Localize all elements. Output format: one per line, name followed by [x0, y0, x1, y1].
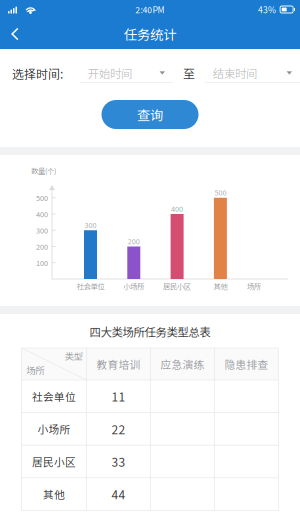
- staticText: 隐患排查: [224, 356, 268, 372]
- staticText: 结束时间: [213, 65, 257, 81]
- staticText: 11: [111, 388, 125, 405]
- staticText: 查询: [137, 105, 163, 124]
- staticText: 应急演练: [160, 356, 204, 372]
- staticText: 场所: [26, 363, 44, 377]
- staticText: 500: [214, 187, 226, 197]
- button[interactable]: 结束时间: [205, 64, 300, 83]
- staticText: 22: [111, 420, 125, 438]
- staticText: 500: [36, 192, 48, 203]
- staticText: 社会单位: [76, 281, 104, 291]
- staticText: 44: [111, 485, 125, 503]
- staticText: 100: [36, 257, 48, 268]
- staticText: 小场所: [123, 281, 144, 291]
- staticText: 2:40PM: [135, 3, 164, 16]
- staticText: 数量(个): [31, 165, 56, 176]
- staticText: 选择时间:: [12, 65, 63, 82]
- staticText: 其他: [213, 281, 227, 291]
- staticText: 300: [84, 219, 96, 230]
- staticText: 至: [183, 65, 195, 82]
- staticText: 200: [128, 236, 140, 246]
- staticText: 小场所: [37, 421, 70, 437]
- staticText: 社会单位: [32, 389, 76, 404]
- staticText: 300: [36, 225, 48, 235]
- staticText: 类型: [64, 349, 82, 363]
- staticText: 开始时间: [88, 65, 132, 81]
- staticText: 场所: [247, 281, 261, 291]
- staticText: 400: [171, 203, 183, 214]
- staticText: 43%: [258, 3, 276, 16]
- staticText: 任务统计: [124, 24, 176, 44]
- button[interactable]: 查询: [101, 100, 198, 129]
- button[interactable]: 返回: [0, 19, 30, 49]
- staticText: 33: [111, 453, 125, 470]
- staticText: 居民小区: [163, 281, 191, 291]
- staticText: 教育培训: [96, 356, 140, 372]
- staticText: 居民小区: [32, 454, 76, 469]
- staticText: 400: [36, 209, 48, 219]
- staticText: 200: [36, 241, 48, 252]
- button[interactable]: 开始时间: [80, 64, 173, 83]
- staticText: 四大类场所任务类型总表: [89, 323, 210, 340]
- staticText: 其他: [43, 486, 65, 502]
